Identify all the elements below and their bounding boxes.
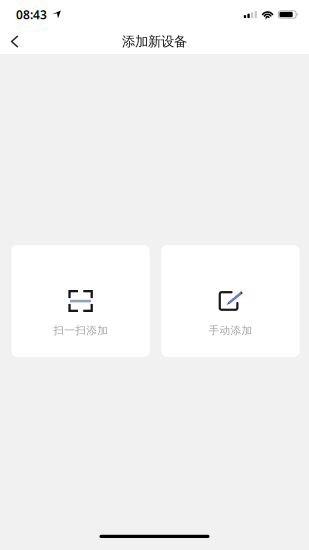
staticText: 手动添加 <box>208 324 252 337</box>
button[interactable]: 手动添加 <box>161 245 299 357</box>
button[interactable]: Back <box>0 29 28 54</box>
staticText: 08:43 <box>16 6 47 22</box>
button[interactable]: 扫一扫添加 <box>11 245 150 357</box>
staticText: 添加新设备 <box>122 33 187 50</box>
staticText: 扫一扫添加 <box>53 324 108 337</box>
